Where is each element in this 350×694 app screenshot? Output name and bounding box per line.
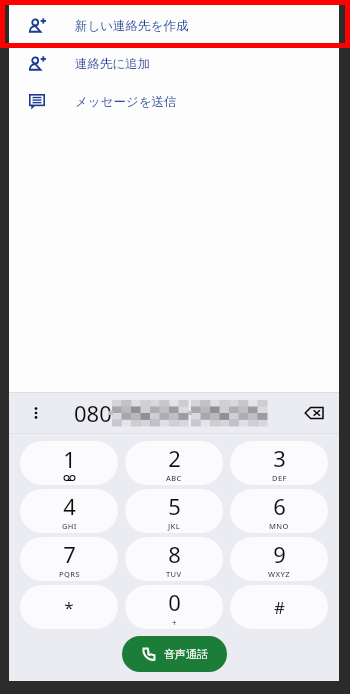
- staticText: 5: [168, 491, 181, 521]
- button[interactable]: 1: [20, 441, 118, 485]
- button[interactable]: 音声通話: [122, 636, 227, 672]
- button[interactable]: 4: [20, 489, 118, 533]
- button[interactable]: 連絡先に追加: [9, 49, 339, 78]
- staticText: 2: [168, 443, 181, 473]
- staticText: 0: [168, 587, 181, 617]
- staticText: 音声通話: [164, 647, 208, 661]
- staticText: TUV: [166, 569, 182, 579]
- staticText: DEF: [272, 473, 287, 483]
- staticText: 7: [63, 539, 76, 569]
- staticText: メッセージを送信: [75, 94, 177, 110]
- button[interactable]: 2: [125, 441, 223, 485]
- staticText: 新しい連絡先を作成: [75, 18, 189, 34]
- button[interactable]: Backspace: [301, 400, 327, 426]
- staticText: *: [64, 596, 74, 619]
- staticText: 連絡先に追加: [75, 56, 151, 72]
- staticText: 8: [168, 539, 181, 569]
- staticText: 9: [273, 539, 286, 569]
- button[interactable]: #: [230, 585, 328, 629]
- button[interactable]: メッセージを送信: [9, 87, 339, 116]
- staticText: 4: [63, 491, 76, 521]
- button[interactable]: 8: [125, 537, 223, 581]
- button[interactable]: 3: [230, 441, 328, 485]
- staticText: 080: [74, 398, 112, 428]
- staticText: 6: [273, 491, 286, 521]
- staticText: 1: [63, 444, 76, 474]
- button[interactable]: 0: [125, 585, 223, 629]
- staticText: +: [172, 617, 177, 628]
- staticText: 3: [273, 443, 286, 473]
- button[interactable]: 9: [230, 537, 328, 581]
- button[interactable]: 新しい連絡先を作成: [9, 11, 339, 40]
- staticText: JKL: [168, 521, 181, 531]
- staticText: MNO: [269, 521, 289, 531]
- staticText: WXYZ: [268, 569, 290, 579]
- button[interactable]: More options: [25, 402, 47, 424]
- staticText: GHI: [62, 521, 77, 531]
- staticText: PQRS: [59, 569, 80, 579]
- button[interactable]: 7: [20, 537, 118, 581]
- button[interactable]: 5: [125, 489, 223, 533]
- button[interactable]: *: [20, 585, 118, 629]
- staticText: ABC: [166, 473, 182, 483]
- button[interactable]: 6: [230, 489, 328, 533]
- staticText: #: [274, 596, 285, 619]
